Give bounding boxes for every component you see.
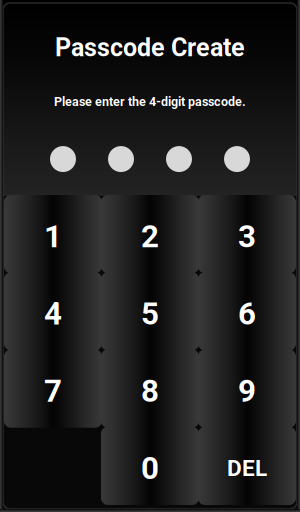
button[interactable]: 3 xyxy=(200,197,294,271)
button[interactable]: 6 xyxy=(200,274,294,348)
staticText: 6 xyxy=(238,295,256,332)
button[interactable]: 1 xyxy=(6,197,100,271)
button[interactable]: 9 xyxy=(200,351,294,426)
staticText: 9 xyxy=(238,373,256,409)
button[interactable]: 5 xyxy=(103,274,197,348)
staticText: 4 xyxy=(44,295,62,332)
button[interactable]: DEL xyxy=(200,429,294,503)
staticText: 2 xyxy=(141,218,159,255)
staticText: 3 xyxy=(238,218,256,255)
staticText: 5 xyxy=(141,295,159,332)
staticText: DEL xyxy=(227,455,267,482)
button[interactable]: 4 xyxy=(6,274,100,348)
button[interactable]: 7 xyxy=(6,351,100,426)
staticText: 8 xyxy=(141,373,159,409)
button[interactable]: 2 xyxy=(103,197,197,271)
staticText: 1 xyxy=(44,218,62,255)
staticText: Please enter the 4-digit passcode. xyxy=(54,94,246,109)
button[interactable]: 0 xyxy=(103,429,197,503)
button[interactable]: 8 xyxy=(103,351,197,426)
staticText: Passcode Create xyxy=(55,33,245,62)
staticText: 7 xyxy=(44,373,62,409)
staticText: 0 xyxy=(141,450,159,487)
